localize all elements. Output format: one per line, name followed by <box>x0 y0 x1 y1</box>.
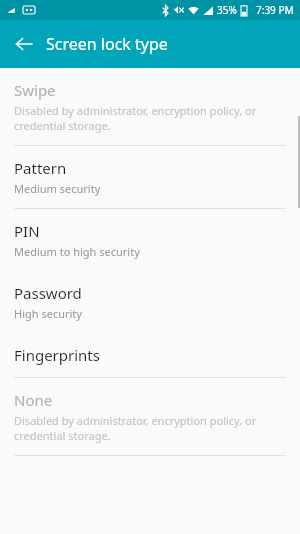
staticText: 35% <box>217 3 237 17</box>
staticText: Fingerprints <box>14 345 100 365</box>
staticText: High security <box>14 306 82 321</box>
staticText: Medium to high security <box>14 244 140 259</box>
button[interactable]: Swipe <box>0 68 300 145</box>
staticText: Swipe <box>14 80 56 100</box>
button[interactable]: PIN <box>0 209 300 271</box>
button[interactable]: Navigate up <box>6 26 42 62</box>
staticText: Disabled by administrator, encryption po… <box>14 413 282 443</box>
button[interactable]: Password <box>0 271 300 333</box>
button[interactable]: None <box>0 378 300 455</box>
staticText: Password <box>14 283 82 303</box>
staticText: Screen lock type <box>46 33 168 55</box>
button[interactable]: Pattern <box>0 146 300 208</box>
staticText: PIN <box>14 221 40 241</box>
staticText: 7:39 PM <box>256 3 294 17</box>
staticText: Disabled by administrator, encryption po… <box>14 103 282 133</box>
button[interactable]: Fingerprints <box>0 333 300 377</box>
staticText: Pattern <box>14 158 67 178</box>
staticText: None <box>14 390 53 410</box>
staticText: Medium security <box>14 181 101 196</box>
